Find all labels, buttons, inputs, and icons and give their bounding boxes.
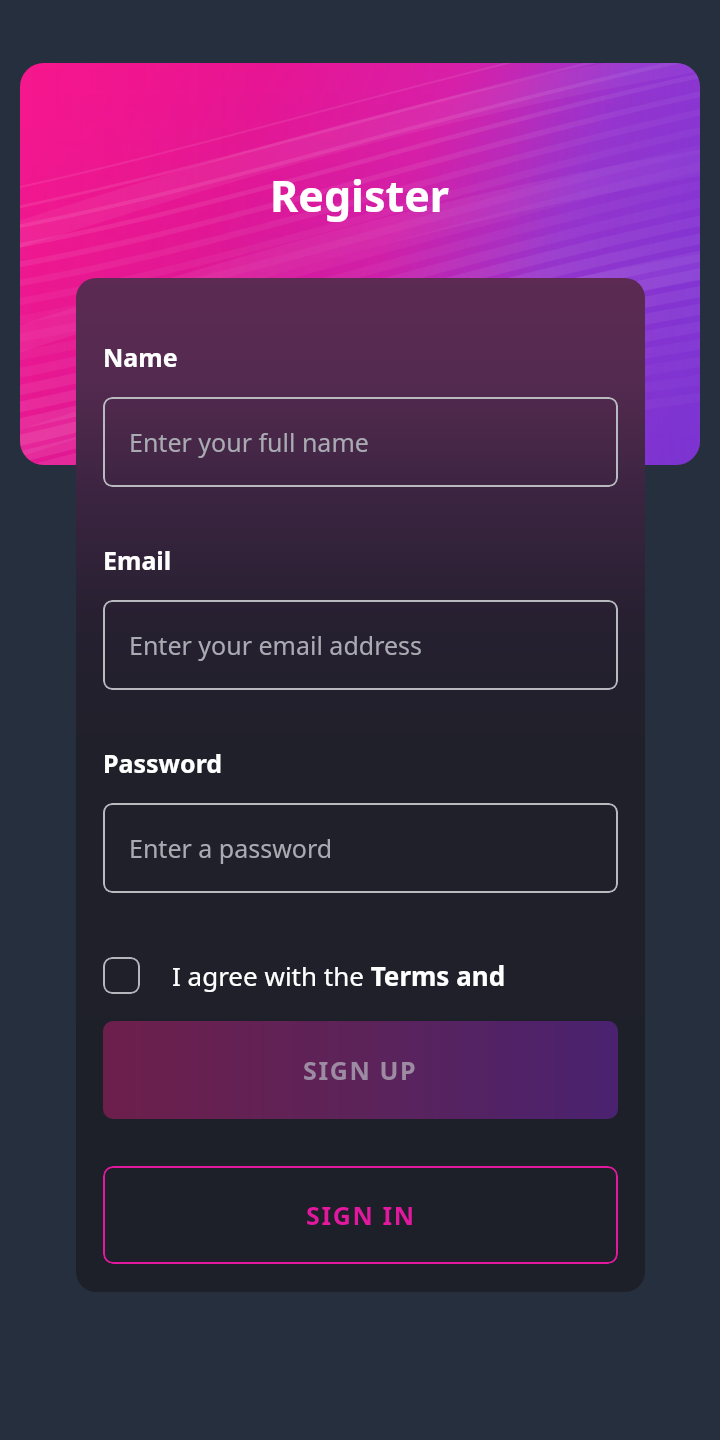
button[interactable]: Enter your email address (103, 600, 618, 690)
staticText: Enter your email address (129, 628, 423, 662)
staticText: Register (270, 166, 450, 225)
staticText: Enter your full name (129, 425, 369, 459)
staticText: Password (103, 746, 223, 780)
staticText: SIGN IN (306, 1198, 416, 1232)
staticText: Enter a password (129, 831, 333, 865)
staticText: I agree with the Terms and Conditions (172, 958, 645, 993)
staticText: Name (103, 340, 178, 374)
button[interactable]: Enter your full name (103, 397, 618, 487)
button[interactable]: SIGN UP (103, 1021, 618, 1119)
button[interactable]: Agree to terms checkbox (103, 946, 645, 1004)
button[interactable]: SIGN IN (103, 1166, 618, 1264)
button[interactable]: Enter a password (103, 803, 618, 893)
staticText: SIGN UP (303, 1053, 418, 1087)
staticText: Email (103, 543, 172, 577)
other: Agree to terms checkbox (103, 957, 140, 994)
